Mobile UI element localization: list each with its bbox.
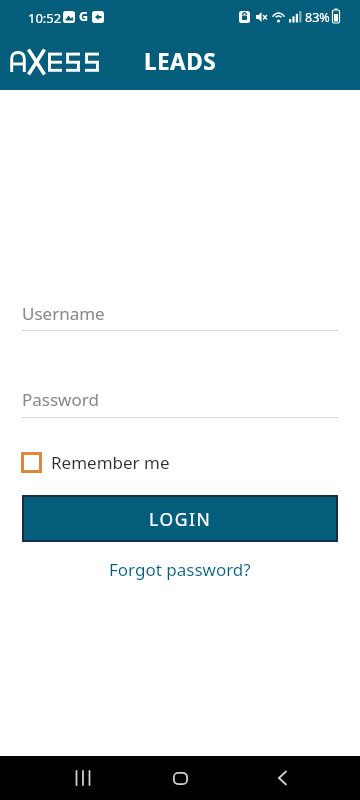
staticText: LOGIN	[149, 507, 212, 531]
button[interactable]: Username	[22, 296, 338, 336]
staticText: 10:52	[28, 9, 62, 27]
button[interactable]: Forgot password?	[109, 558, 251, 581]
staticText: 83%	[305, 9, 330, 26]
button[interactable]	[262, 760, 302, 796]
staticText: G	[79, 8, 89, 25]
staticText: Remember me	[51, 451, 170, 474]
button[interactable]	[160, 760, 200, 796]
button[interactable]: Password	[22, 382, 338, 422]
staticText: Password	[22, 388, 99, 411]
staticText: Username	[22, 302, 105, 325]
staticText: LEADS	[0, 46, 360, 77]
button[interactable]: Remember me	[21, 451, 170, 474]
button[interactable]: LOGIN	[22, 495, 338, 542]
button[interactable]	[63, 760, 103, 796]
